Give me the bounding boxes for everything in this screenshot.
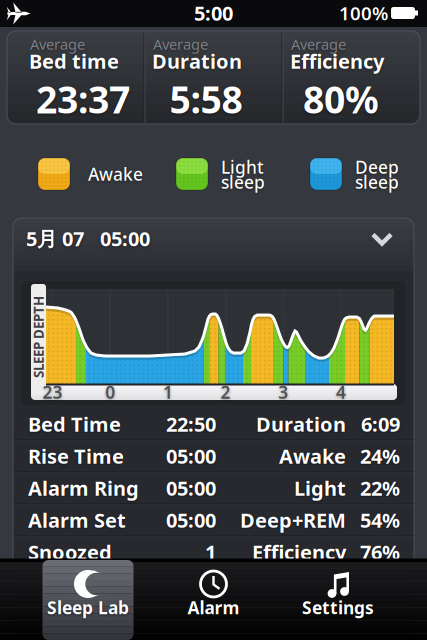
staticText: Deep <box>355 155 399 178</box>
staticText: Rise Time <box>28 443 124 469</box>
staticText: 80% <box>303 74 379 124</box>
staticText: 76% <box>360 539 400 565</box>
staticText: 1 <box>163 380 173 403</box>
staticText: 3 <box>278 380 288 403</box>
staticText: 05:00 <box>166 475 216 501</box>
staticText: 5:00 <box>194 0 233 26</box>
staticText: Alarm Set <box>28 507 126 533</box>
staticText: Snoozed <box>28 539 112 565</box>
staticText: 22% <box>360 475 400 501</box>
staticText: sleep <box>355 170 399 193</box>
button[interactable]: Settings <box>283 562 393 640</box>
staticText: 4 <box>336 380 346 403</box>
staticText: Light <box>294 475 346 501</box>
staticText: 22:50 <box>166 411 216 437</box>
staticText: Efficiency <box>252 539 346 565</box>
staticText: 23 <box>42 380 62 403</box>
staticText: Average <box>153 34 208 54</box>
staticText: Average <box>291 34 346 54</box>
staticText: Duration <box>152 48 242 74</box>
staticText: Duration <box>256 411 346 437</box>
staticText: 05:00 <box>100 225 150 252</box>
button[interactable]: Alarm <box>158 562 268 640</box>
staticText: Bed time <box>29 48 119 74</box>
staticText: 6:09 <box>361 411 400 437</box>
staticText: sleep <box>221 170 265 193</box>
staticText: Awake <box>88 162 143 185</box>
staticText: Bed Time <box>28 411 121 437</box>
staticText: 23:37 <box>36 74 130 124</box>
staticText: Light <box>221 155 264 178</box>
staticText: Sleep Lab <box>47 596 129 619</box>
staticText: 100% <box>339 1 388 25</box>
button[interactable]: 5月 07 <box>13 218 414 271</box>
staticText: 0 <box>105 380 115 403</box>
staticText: 2 <box>221 380 231 403</box>
staticText: Deep+REM <box>240 507 346 533</box>
staticText: Average <box>30 34 85 54</box>
staticText: 1 <box>205 539 216 565</box>
staticText: 24% <box>360 443 400 469</box>
staticText: 54% <box>360 507 400 533</box>
staticText: Efficiency <box>290 48 384 74</box>
button[interactable]: Sleep Lab <box>33 562 143 640</box>
staticText: Alarm <box>187 596 239 619</box>
staticText: Alarm Ring <box>28 475 139 501</box>
staticText: 5月 07 <box>26 225 84 252</box>
staticText: 5:58 <box>169 74 242 124</box>
staticText: Awake <box>279 443 346 469</box>
staticText: 05:00 <box>166 507 216 533</box>
staticText: 05:00 <box>166 443 216 469</box>
staticText: Settings <box>302 596 374 619</box>
staticText: SLEEP DEPTH <box>0 328 79 346</box>
